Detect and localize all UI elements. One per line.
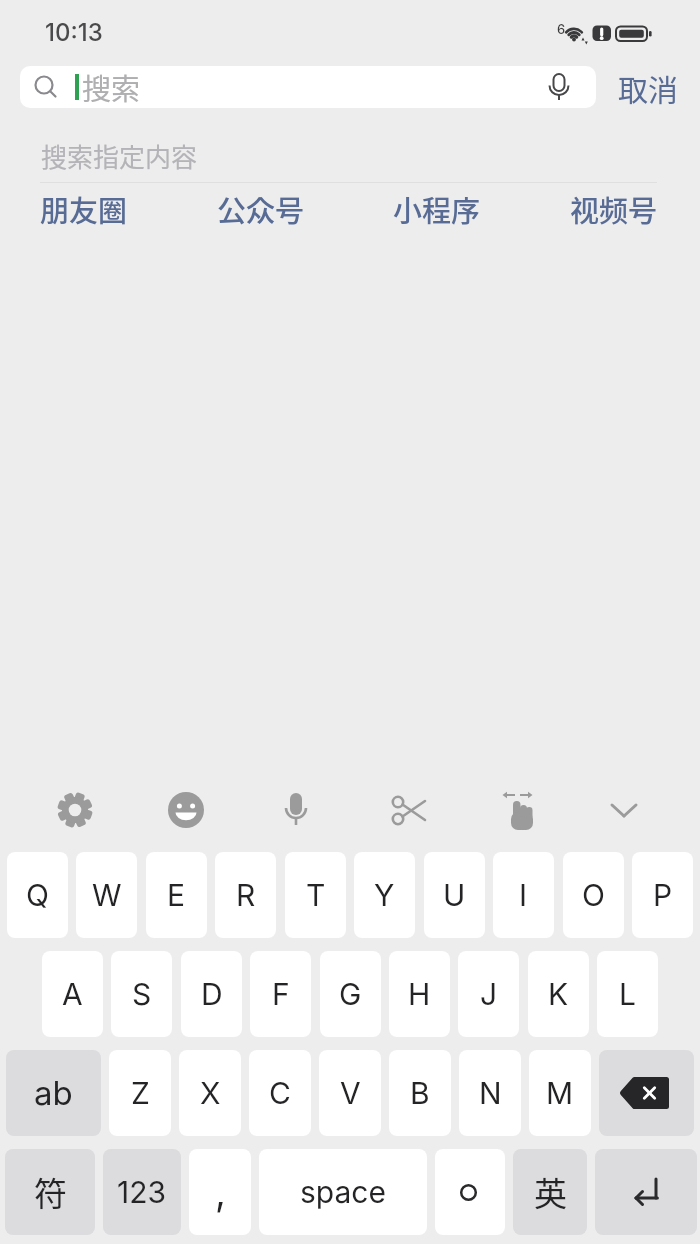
button[interactable] [274,788,318,832]
staticText: S [132,976,152,1012]
staticText: 搜索指定内容 [41,137,198,175]
staticText: Y [374,877,395,913]
button[interactable]: T [285,852,346,938]
button[interactable]: A [42,951,103,1037]
staticText: Z [131,1075,150,1111]
button[interactable]: Q [7,852,68,938]
button[interactable]: 符 [5,1149,95,1235]
staticText: space [300,1174,386,1210]
staticText: 取消 [618,66,678,108]
button[interactable]: I [493,852,554,938]
button[interactable] [386,788,430,832]
staticText: 搜索 [82,66,141,108]
staticText: M [546,1075,574,1111]
button[interactable]: L [597,951,658,1037]
staticText: G [339,976,362,1012]
staticText: F [272,976,290,1012]
button[interactable] [602,788,646,832]
button[interactable]: Z [109,1050,171,1136]
button[interactable]: X [179,1050,241,1136]
button[interactable]: N [459,1050,521,1136]
button[interactable] [53,788,97,832]
staticText: E [167,877,186,913]
button[interactable]: M [529,1050,591,1136]
button[interactable] [595,1149,697,1235]
button[interactable]: S [111,951,172,1037]
staticText: D [201,976,223,1012]
button[interactable]: space [259,1149,427,1235]
staticText: X [200,1075,221,1111]
button[interactable]: K [528,951,589,1037]
button[interactable]: Y [354,852,415,938]
button[interactable]: W [76,852,137,938]
staticText: Q [26,877,49,913]
staticText: 10:13 [45,18,103,47]
button[interactable]: B [389,1050,451,1136]
staticText: J [480,976,498,1012]
staticText: 符 [34,1168,67,1216]
button[interactable]: 公众号 [217,188,305,230]
button[interactable]: C [249,1050,311,1136]
button[interactable]: G [320,951,381,1037]
staticText: T [306,877,326,913]
staticText: A [62,976,83,1012]
button[interactable]: R [215,852,276,938]
staticText: 6 [557,21,566,37]
button[interactable]: 取消 [596,66,700,108]
staticText: B [410,1075,430,1111]
button[interactable]: 朋友圈 [40,188,128,230]
button[interactable]: 小程序 [393,188,481,230]
staticText: R [236,877,256,913]
button[interactable]: J [458,951,519,1037]
button[interactable]: E [146,852,207,938]
button[interactable]: H [389,951,450,1037]
button[interactable]: P [632,852,693,938]
button[interactable] [544,72,574,102]
staticText: 英 [534,1168,567,1216]
staticText: P [653,877,673,913]
staticText: 123 [117,1174,167,1210]
button[interactable]: D [181,951,242,1037]
staticText: I [519,877,528,913]
staticText: W [92,877,122,913]
button[interactable] [496,788,540,832]
staticText: O [582,877,605,913]
button[interactable] [164,788,208,832]
button[interactable]: 搜索 [20,66,596,108]
button[interactable]: O [563,852,624,938]
button[interactable] [599,1050,694,1136]
staticText: , [215,1169,226,1215]
staticText: L [619,976,636,1012]
button[interactable]: ab [6,1050,101,1136]
button[interactable]: V [319,1050,381,1136]
button[interactable] [435,1149,505,1235]
button[interactable]: 视频号 [570,188,658,230]
button[interactable]: F [250,951,311,1037]
staticText: N [479,1075,502,1111]
staticText: C [269,1075,291,1111]
staticText: ab [34,1073,73,1113]
staticText: K [548,976,569,1012]
staticText: H [408,976,431,1012]
button[interactable]: , [189,1149,251,1235]
staticText: V [340,1075,361,1111]
button[interactable]: 123 [103,1149,181,1235]
button[interactable]: 英 [513,1149,587,1235]
staticText: U [443,877,466,913]
button[interactable]: U [424,852,485,938]
